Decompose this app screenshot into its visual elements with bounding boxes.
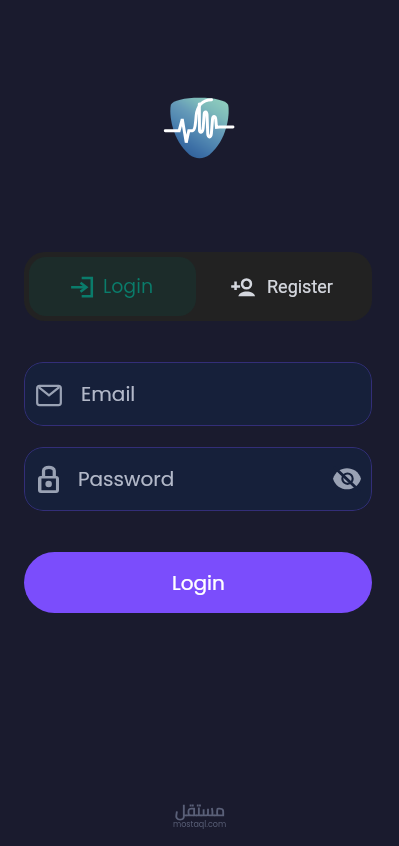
button[interactable]: Show password: [329, 461, 365, 497]
staticText: Register: [267, 276, 333, 297]
button[interactable]: Login: [29, 257, 196, 316]
staticText: Email: [81, 380, 136, 408]
button[interactable]: Email: [24, 362, 372, 426]
staticText: Login: [103, 273, 154, 300]
staticText: mostaql.com: [173, 819, 227, 830]
staticText: مستقل: [175, 795, 226, 825]
button[interactable]: Register: [196, 257, 367, 316]
button[interactable]: Login: [24, 552, 372, 613]
staticText: Login: [172, 569, 225, 597]
button[interactable]: Password: [24, 447, 372, 511]
staticText: Password: [78, 465, 329, 493]
